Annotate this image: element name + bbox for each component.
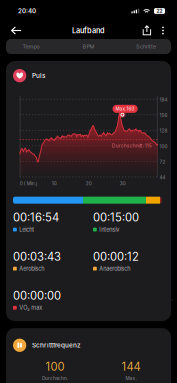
staticText: 72 — [159, 159, 165, 165]
staticText: Max. — [125, 375, 136, 381]
staticText: Anaerobisch — [99, 265, 130, 272]
button[interactable]: Back — [5, 22, 27, 39]
staticText: Schritte — [136, 43, 156, 50]
button[interactable]: BPM — [70, 39, 106, 54]
staticText: 30 — [120, 181, 126, 186]
button[interactable]: More options — [156, 22, 170, 39]
staticText: 44 — [159, 175, 165, 180]
staticText: VO₂ max — [19, 304, 42, 311]
staticText: 00:00:00 — [13, 289, 61, 302]
staticText: Intensiv — [99, 226, 119, 233]
staticText: 22 — [156, 8, 162, 14]
staticText: 144 — [121, 360, 140, 373]
button[interactable]: Tempo — [13, 39, 49, 54]
staticText: 0 ( Min.) — [20, 181, 38, 186]
staticText: 184 — [159, 97, 167, 103]
staticText: 100 — [159, 144, 167, 149]
staticText: 00:15:00 — [93, 211, 139, 224]
staticText: 00:16:54 — [13, 211, 59, 224]
staticText: 20:40 — [18, 7, 36, 15]
staticText: 10 — [52, 181, 57, 186]
staticText: BPM — [82, 43, 94, 50]
button[interactable]: Share — [138, 22, 156, 39]
staticText: 20 — [86, 181, 92, 186]
staticText: Durchschnitt: 115 — [112, 143, 152, 149]
staticText: 00:03:43 — [13, 250, 61, 263]
staticText: Laufband — [72, 26, 105, 35]
button[interactable]: Schritte — [128, 39, 164, 54]
staticText: 128 — [159, 128, 167, 134]
staticText: Schrittfrequenz — [32, 341, 81, 349]
staticText: Aerobisch — [19, 265, 44, 272]
staticText: 156 — [159, 112, 167, 118]
staticText: 00:00:12 — [93, 250, 139, 263]
staticText: Leicht — [19, 226, 34, 233]
staticText: Puls — [32, 72, 45, 79]
staticText: Durchschn. — [42, 375, 68, 381]
staticText: 100 — [45, 360, 64, 373]
staticText: Max. 160 — [116, 106, 135, 112]
staticText: Tempo — [22, 43, 39, 50]
